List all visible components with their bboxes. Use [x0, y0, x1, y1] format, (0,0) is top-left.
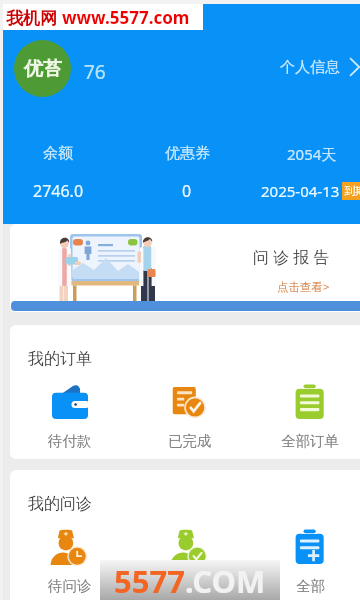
button[interactable]: 问 诊 报 告: [10, 224, 360, 312]
staticText: 2025-04-13: [261, 181, 340, 201]
button[interactable]: 个人信息: [274, 52, 360, 82]
button[interactable]: 已完成: [130, 529, 250, 595]
staticText: 我的订单: [28, 349, 92, 369]
button[interactable]: Avatar: [14, 40, 71, 97]
staticText: 个人信息: [280, 58, 340, 77]
staticText: 我机网: [6, 6, 62, 29]
staticText: 5577: [114, 560, 185, 600]
staticText: 全部订单: [281, 432, 339, 450]
staticText: 余额: [43, 144, 73, 163]
staticText: 待问诊: [48, 577, 92, 595]
staticText: .COM: [185, 560, 266, 600]
staticText: 已完成: [168, 432, 212, 450]
staticText: 2054天: [287, 144, 337, 164]
button[interactable]: 全部订单: [250, 384, 360, 450]
staticText: 问 诊 报 告: [253, 246, 330, 268]
staticText: 优惠券: [165, 144, 210, 163]
staticText: 0: [182, 180, 192, 202]
button[interactable]: 全部: [250, 529, 360, 595]
staticText: 已完成: [168, 577, 212, 595]
button[interactable]: 待问诊: [10, 529, 130, 595]
staticText: 2746.0: [33, 180, 84, 202]
staticText: 待付款: [48, 432, 92, 450]
staticText: 点击查看>: [277, 279, 330, 295]
button[interactable]: 已完成: [130, 384, 250, 450]
staticText: 我的问诊: [28, 494, 92, 514]
staticText: 全部: [296, 577, 325, 595]
staticText: 优苔: [24, 57, 62, 81]
staticText: 76: [84, 59, 106, 85]
button[interactable]: 待付款: [10, 384, 130, 450]
staticText: www.5577.com: [62, 6, 190, 29]
staticText: 到期: [344, 184, 360, 198]
